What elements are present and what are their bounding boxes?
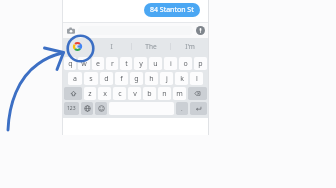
staticText: t bbox=[125, 59, 128, 69]
button[interactable]: l bbox=[190, 72, 203, 85]
button[interactable]: Shift bbox=[64, 87, 82, 100]
staticText: c bbox=[118, 89, 122, 99]
button[interactable]: d bbox=[100, 72, 113, 85]
staticText: . bbox=[181, 105, 183, 113]
button[interactable]: b bbox=[143, 87, 156, 100]
staticText: o bbox=[183, 59, 188, 69]
button[interactable]: . bbox=[176, 102, 188, 115]
button[interactable]: Backspace bbox=[188, 87, 207, 100]
button[interactable]: n bbox=[158, 87, 171, 100]
staticText: 123 bbox=[67, 105, 76, 112]
staticText: q bbox=[68, 59, 73, 69]
button[interactable]: Enter bbox=[190, 102, 207, 115]
staticText: h bbox=[149, 74, 154, 84]
staticText: e bbox=[96, 59, 100, 69]
staticText: s bbox=[89, 74, 93, 84]
button[interactable]: x bbox=[98, 87, 111, 100]
button[interactable]: m bbox=[173, 87, 186, 100]
staticText: l bbox=[196, 74, 198, 84]
staticText: v bbox=[133, 89, 137, 99]
staticText: b bbox=[147, 89, 152, 99]
staticText: y bbox=[139, 59, 143, 69]
button[interactable]: I'm bbox=[171, 38, 209, 55]
staticText: I'm bbox=[185, 42, 195, 51]
button[interactable]: y bbox=[134, 57, 147, 70]
button[interactable]: i bbox=[164, 57, 177, 70]
button[interactable]: z bbox=[84, 87, 96, 100]
staticText: g bbox=[134, 74, 139, 84]
staticText: j bbox=[166, 74, 168, 84]
staticText: I bbox=[110, 42, 113, 51]
button[interactable]: 84 Stanton St bbox=[144, 3, 200, 17]
staticText: p bbox=[198, 59, 203, 69]
staticText: m bbox=[176, 89, 183, 99]
staticText: z bbox=[88, 89, 92, 99]
button[interactable]: f bbox=[115, 72, 128, 85]
staticText: u bbox=[153, 59, 158, 69]
button[interactable]: k bbox=[175, 72, 188, 85]
button[interactable]: o bbox=[179, 57, 192, 70]
button[interactable]: t bbox=[120, 57, 132, 70]
button[interactable]: The bbox=[132, 38, 170, 55]
button[interactable]: Emoji bbox=[95, 102, 107, 115]
button[interactable] bbox=[78, 26, 193, 35]
button[interactable]: q bbox=[64, 57, 76, 70]
staticText: r bbox=[111, 59, 114, 69]
staticText: w bbox=[81, 59, 87, 69]
button[interactable]: Change language bbox=[81, 102, 93, 115]
button[interactable]: 123 bbox=[64, 102, 79, 115]
button[interactable]: s bbox=[84, 72, 98, 85]
button[interactable]: w bbox=[78, 57, 90, 70]
staticText: i bbox=[170, 59, 172, 69]
button[interactable]: a bbox=[68, 72, 82, 85]
button[interactable]: u bbox=[149, 57, 162, 70]
button[interactable]: e bbox=[92, 57, 104, 70]
button[interactable]: h bbox=[145, 72, 158, 85]
button[interactable]: v bbox=[128, 87, 141, 100]
button[interactable]: Send bbox=[196, 26, 205, 35]
button[interactable]: Google search bbox=[62, 38, 92, 55]
button[interactable]: p bbox=[194, 57, 207, 70]
staticText: k bbox=[180, 74, 184, 84]
staticText: a bbox=[73, 74, 77, 84]
staticText: d bbox=[104, 74, 109, 84]
button[interactable]: Camera bbox=[65, 25, 76, 36]
staticText: f bbox=[120, 74, 123, 84]
staticText: 84 Stanton St bbox=[150, 5, 194, 15]
staticText: The bbox=[145, 42, 157, 51]
button[interactable]: j bbox=[160, 72, 173, 85]
button[interactable]: r bbox=[106, 57, 118, 70]
button[interactable]: g bbox=[130, 72, 143, 85]
staticText: x bbox=[103, 89, 107, 99]
button[interactable]: c bbox=[113, 87, 126, 100]
staticText: n bbox=[162, 89, 167, 99]
button[interactable]: I bbox=[92, 38, 131, 55]
